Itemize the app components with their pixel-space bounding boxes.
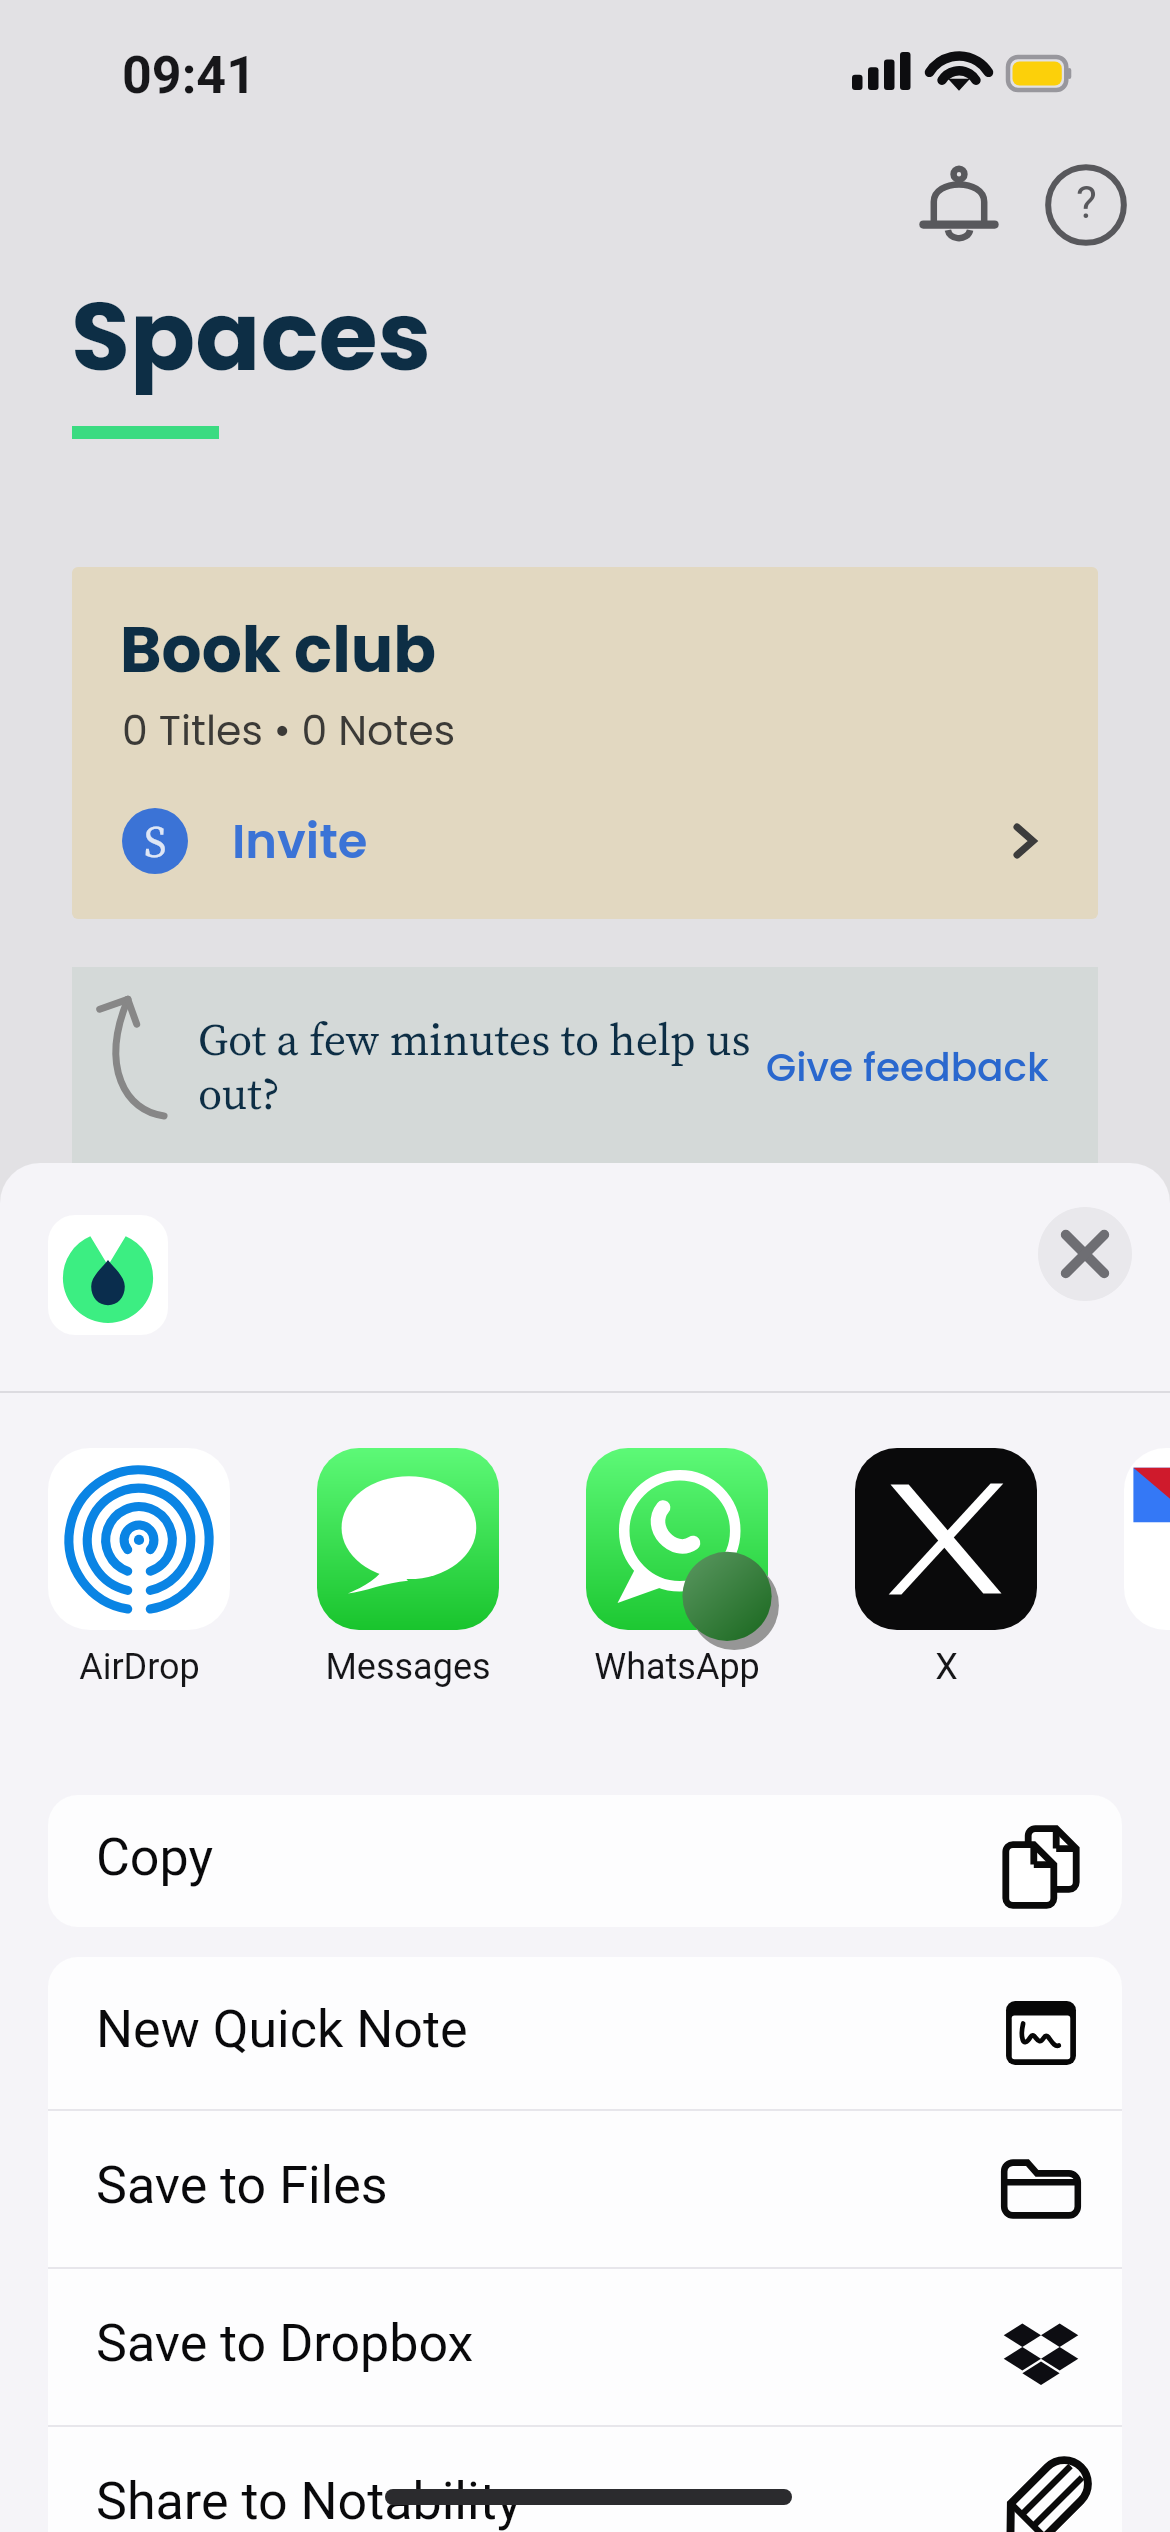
staticText: New Quick Note xyxy=(96,1999,468,2060)
button[interactable]: Share to Notability xyxy=(48,2427,1122,2532)
staticText: Messages xyxy=(325,1646,491,1688)
button[interactable]: AirDrop xyxy=(48,1448,230,1688)
staticText: Spaces xyxy=(71,269,432,403)
staticText: X xyxy=(935,1646,958,1688)
button[interactable]: Notifications xyxy=(909,155,1009,255)
button[interactable]: Help xyxy=(1036,155,1136,255)
staticText: Copy xyxy=(96,1827,214,1888)
button[interactable]: WhatsApp xyxy=(586,1448,768,1688)
button[interactable]: Close xyxy=(1038,1207,1132,1301)
staticText: Save to Files xyxy=(96,2155,388,2216)
button[interactable]: S xyxy=(122,803,1050,879)
staticText: 09:41 xyxy=(122,45,257,106)
staticText: 0 Titles • 0 Notes xyxy=(122,702,456,759)
staticText: Invite xyxy=(232,808,368,875)
staticText: Share to Notability xyxy=(96,2471,522,2532)
staticText: WhatsApp xyxy=(594,1646,760,1688)
button[interactable]: New Quick Note xyxy=(48,1957,1122,2109)
staticText: ? xyxy=(1076,177,1097,229)
button[interactable]: X xyxy=(855,1448,1037,1688)
staticText: Got a few minutes to help us out? xyxy=(198,1009,758,1124)
button[interactable]: Copy xyxy=(48,1795,1122,1927)
staticText: AirDrop xyxy=(79,1646,200,1688)
staticText: S xyxy=(144,811,167,871)
button[interactable]: Save to Dropbox xyxy=(48,2269,1122,2425)
staticText: Book club xyxy=(120,606,437,694)
button[interactable]: Save to Files xyxy=(48,2111,1122,2267)
button[interactable]: Give feedback xyxy=(762,1007,1052,1127)
staticText: Give feedback xyxy=(766,1040,1049,1095)
button[interactable] xyxy=(1124,1448,1170,1688)
button[interactable]: Messages xyxy=(317,1448,499,1688)
staticText: Save to Dropbox xyxy=(96,2313,474,2374)
button[interactable]: Book club xyxy=(72,567,1098,919)
